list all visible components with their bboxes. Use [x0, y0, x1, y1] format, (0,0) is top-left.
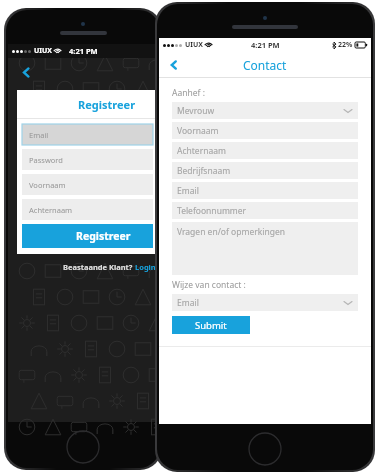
button[interactable]: Email: [22, 124, 153, 145]
staticText: Achternaam: [177, 145, 226, 157]
staticText: Voornaam: [177, 125, 219, 137]
staticText: Login: [135, 262, 156, 272]
button[interactable]: Email: [172, 182, 358, 199]
staticText: Email: [29, 130, 49, 140]
staticText: Email: [177, 185, 199, 197]
staticText: Registreer: [78, 97, 136, 112]
staticText: Contact: [243, 57, 287, 73]
button[interactable]: Bedrijfsnaam: [172, 162, 358, 179]
staticText: Email: [177, 297, 199, 309]
staticText: 4:21 PM: [69, 46, 98, 56]
button[interactable]: Back: [163, 54, 185, 76]
button[interactable]: Back: [14, 60, 38, 84]
staticText: Aanhef :: [172, 87, 205, 99]
button[interactable]: Telefoonnummer: [172, 202, 358, 219]
staticText: Telefoonnummer: [177, 205, 247, 217]
staticText: Beastaande Klant?: [63, 262, 135, 272]
button[interactable]: Voornaam: [172, 122, 358, 139]
button[interactable]: Achternaam: [22, 199, 153, 220]
button[interactable]: Registreer: [22, 224, 153, 248]
button[interactable]: Mevrouw: [172, 102, 358, 119]
button[interactable]: Submit: [172, 316, 250, 334]
staticText: Achternaam: [29, 205, 73, 215]
staticText: Password: [29, 155, 63, 165]
staticText: 22%: [338, 40, 353, 50]
staticText: Mevrouw: [177, 105, 215, 117]
staticText: Voornaam: [29, 180, 66, 190]
button[interactable]: Login: [135, 262, 156, 272]
button[interactable]: Password: [22, 149, 153, 170]
staticText: Submit: [195, 319, 227, 332]
staticText: Wijze van contact :: [172, 279, 246, 291]
button[interactable]: Voornaam: [22, 174, 153, 195]
button[interactable]: Vragen en/of opmerkingen: [172, 222, 358, 275]
staticText: Registreer: [76, 229, 131, 243]
staticText: UIUX: [185, 40, 203, 50]
staticText: Bedrijfsnaam: [177, 165, 231, 177]
staticText: UIUX: [34, 46, 52, 56]
button[interactable]: Achternaam: [172, 142, 358, 159]
staticText: Vragen en/of opmerkingen: [177, 226, 285, 238]
staticText: 4:21 PM: [251, 40, 280, 50]
button[interactable]: Email: [172, 294, 358, 311]
